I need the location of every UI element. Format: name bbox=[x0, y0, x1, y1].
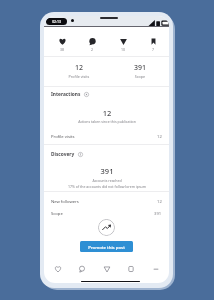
staticText: Discovery bbox=[51, 151, 75, 158]
button[interactable]: Promote this post bbox=[80, 241, 133, 252]
button[interactable]: Insights bbox=[98, 219, 115, 236]
staticText: 12 bbox=[157, 199, 162, 205]
staticText: Accounts reached bbox=[47, 178, 167, 183]
staticText: 12 bbox=[44, 63, 139, 73]
button[interactable]: send bbox=[110, 38, 136, 52]
staticText: Actions taken since this publication bbox=[47, 119, 167, 124]
staticText: 7 bbox=[140, 47, 166, 52]
staticText: 17% of the accounts did not follow lorem… bbox=[47, 184, 167, 189]
staticText: 12 bbox=[47, 108, 167, 118]
staticText: 391 bbox=[80, 63, 169, 73]
staticText: 2 bbox=[79, 47, 105, 52]
button[interactable]: square bbox=[120, 263, 142, 275]
button[interactable]: comment bbox=[79, 38, 105, 52]
staticText: Promote this post bbox=[88, 244, 125, 250]
staticText: 12 bbox=[157, 134, 162, 140]
staticText: 38 bbox=[49, 47, 75, 52]
button[interactable]: send bbox=[96, 263, 118, 275]
staticText: Profile visits bbox=[51, 134, 75, 140]
button[interactable]: heart bbox=[47, 263, 69, 275]
button[interactable]: New followers bbox=[51, 196, 162, 207]
staticText: Scope bbox=[51, 211, 63, 217]
staticText: Interactions bbox=[51, 91, 81, 98]
button[interactable]: dash bbox=[145, 263, 167, 275]
staticText: Profile visits bbox=[44, 74, 139, 79]
button[interactable]: bookmark bbox=[140, 38, 166, 52]
button[interactable]: Scope bbox=[51, 208, 162, 219]
staticText: 10 bbox=[110, 47, 136, 52]
button[interactable]: Interactions bbox=[51, 89, 89, 99]
button[interactable]: Profile visits bbox=[51, 131, 162, 142]
staticText: 391 bbox=[154, 211, 162, 217]
button[interactable]: Discovery bbox=[51, 149, 83, 159]
staticText: New followers bbox=[51, 199, 79, 205]
staticText: 391 bbox=[47, 166, 167, 176]
staticText: Scope bbox=[80, 74, 169, 79]
button[interactable]: comment bbox=[71, 263, 93, 275]
button[interactable]: heart bbox=[49, 38, 75, 52]
staticText: 02:13 bbox=[52, 19, 61, 24]
